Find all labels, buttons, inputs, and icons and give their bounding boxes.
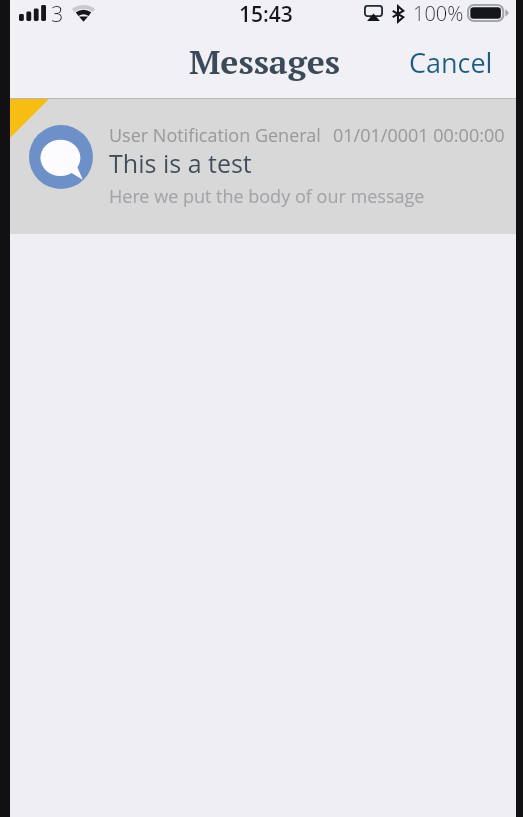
staticText: 100% [413, 0, 464, 27]
staticText: 3 [51, 0, 64, 28]
button[interactable]: User Notification General [10, 99, 516, 234]
staticText: User Notification General [109, 123, 321, 148]
button[interactable]: Cancel [393, 36, 516, 95]
staticText: 15:43 [239, 0, 293, 29]
staticText: 01/01/0001 00:00:00 [333, 123, 505, 148]
staticText: Here we put the body of our message [109, 184, 425, 209]
staticText: Messages [189, 39, 340, 84]
staticText: This is a test [109, 146, 252, 180]
staticText: Cancel [409, 44, 493, 81]
